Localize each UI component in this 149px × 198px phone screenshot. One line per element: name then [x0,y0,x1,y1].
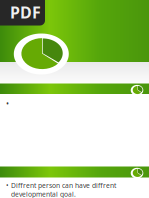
staticText: Diffrent person can have diffrent develo… [11,181,116,198]
staticText: • [6,98,9,109]
staticText: PDF [10,2,41,23]
staticText: • [6,181,9,190]
